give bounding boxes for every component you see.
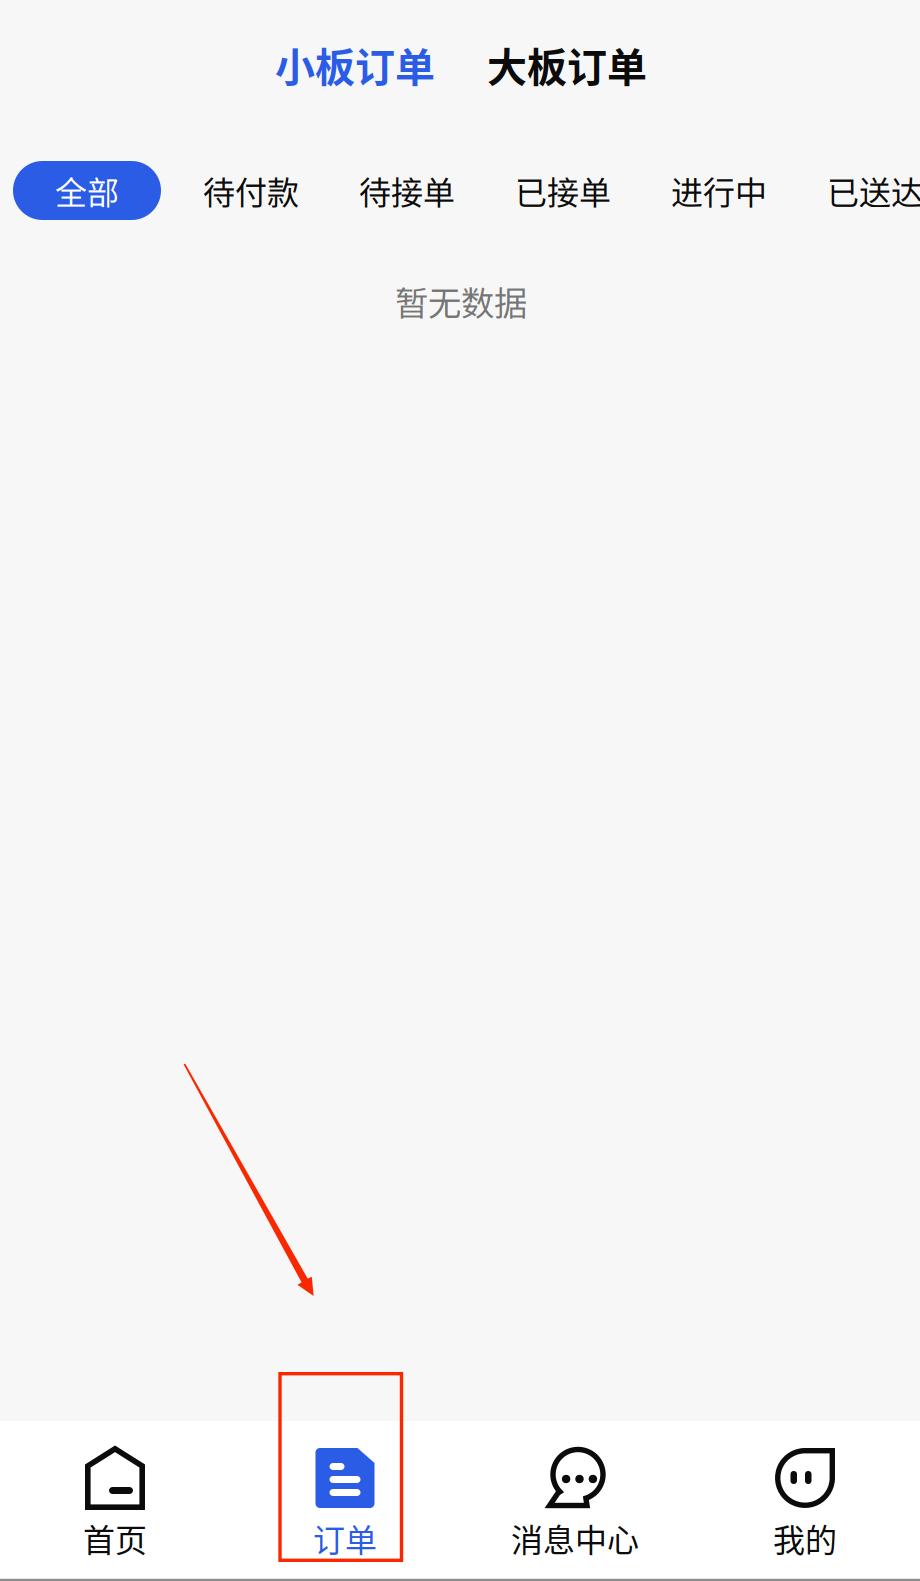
button[interactable]: 待接单 <box>359 161 455 220</box>
button[interactable]: 全部 <box>13 161 161 220</box>
button[interactable]: 已接单 <box>515 161 611 220</box>
button[interactable]: 订单 <box>230 1421 460 1577</box>
button[interactable]: 待付款 <box>203 161 299 220</box>
staticText: 消息中心 <box>511 1515 639 1561</box>
staticText: 待付款 <box>203 167 299 214</box>
staticText: 我的 <box>773 1515 837 1561</box>
button[interactable]: 我的 <box>690 1421 920 1577</box>
staticText: 小板订单 <box>275 35 435 93</box>
staticText: 待接单 <box>359 167 455 214</box>
staticText: 订单 <box>313 1515 377 1561</box>
staticText: 全部 <box>55 167 119 214</box>
staticText: 大板订单 <box>487 35 647 93</box>
staticText: 已送达 <box>827 167 920 214</box>
button[interactable]: 小板订单 <box>276 27 434 101</box>
staticText: 进行中 <box>671 167 767 214</box>
staticText: 已接单 <box>515 167 611 214</box>
button[interactable]: 消息中心 <box>460 1421 690 1577</box>
button[interactable]: 首页 <box>0 1421 230 1577</box>
staticText: 首页 <box>83 1515 147 1561</box>
button[interactable]: 已送达 <box>827 161 920 220</box>
button[interactable]: 进行中 <box>671 161 767 220</box>
staticText: 暂无数据 <box>395 277 527 325</box>
button[interactable]: 大板订单 <box>488 27 646 101</box>
